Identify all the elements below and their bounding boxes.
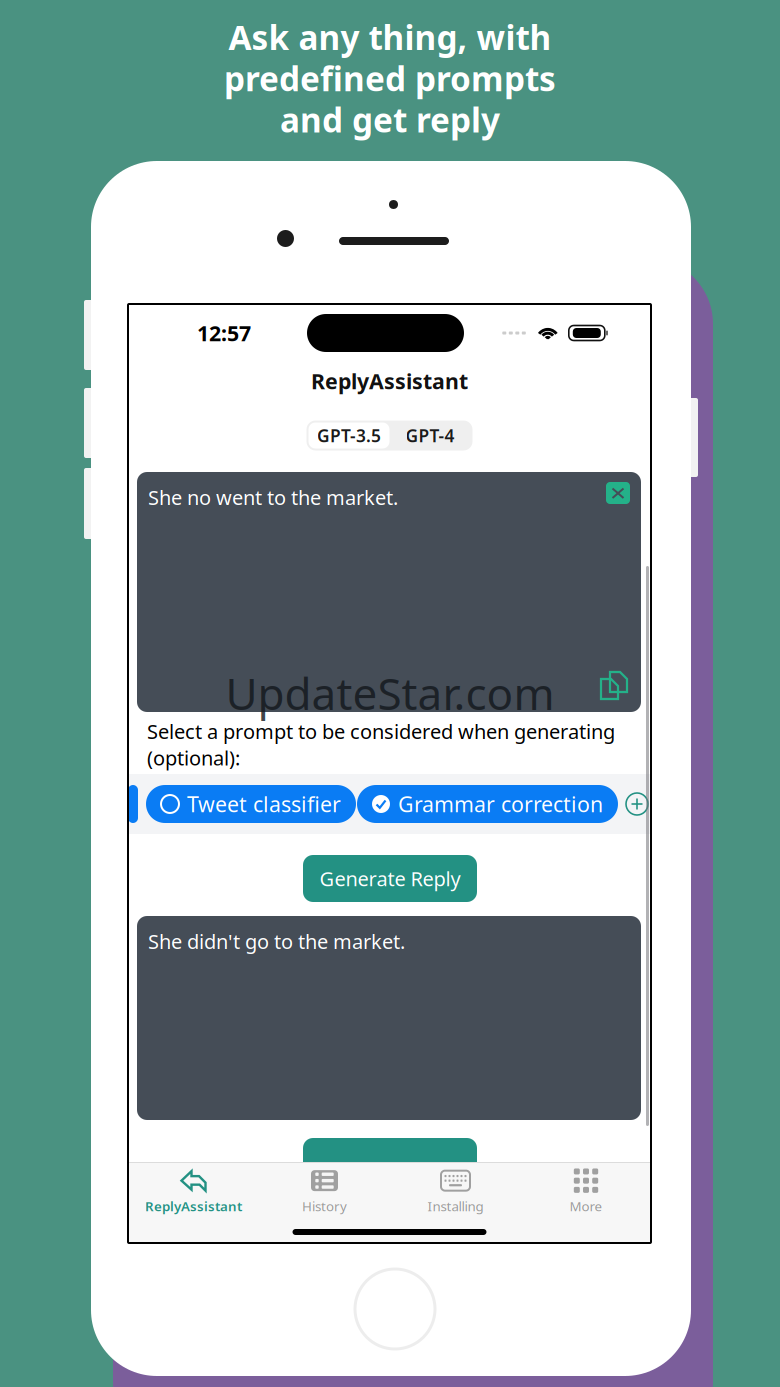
button[interactable]: Copy [599, 670, 630, 702]
staticText: Installing [427, 1197, 483, 1215]
button[interactable]: More [521, 1163, 651, 1221]
staticText: and get reply [280, 97, 500, 142]
staticText: GPT-4 [405, 424, 454, 447]
button[interactable]: GPT-3.5 [308, 422, 389, 448]
button[interactable]: GPT-4 [389, 422, 470, 448]
button[interactable]: Generate Reply [303, 1138, 477, 1185]
staticText: More [569, 1197, 602, 1215]
button[interactable]: Grammar correction [357, 785, 618, 823]
button[interactable]: Clear text [606, 482, 630, 504]
button[interactable]: Tweet classifier [146, 785, 356, 823]
staticText: predefined prompts [224, 56, 556, 101]
staticText: She didn't go to the market. [148, 928, 405, 955]
button[interactable]: Add prompt [626, 793, 648, 815]
staticText: ReplyAssistant [145, 1197, 242, 1215]
staticText: She no went to the market. [148, 484, 398, 511]
staticText: ReplyAssistant [311, 367, 468, 395]
staticText: History [302, 1197, 347, 1215]
staticText: Tweet classifier [187, 790, 341, 818]
button[interactable]: Generate Reply [303, 855, 477, 902]
staticText: 12:57 [197, 319, 251, 347]
staticText: Generate Reply [319, 865, 460, 892]
button[interactable]: Installing [390, 1163, 521, 1221]
staticText: UpdateStar.com [225, 664, 554, 722]
staticText: Grammar correction [398, 790, 603, 818]
staticText: GPT-3.5 [317, 424, 381, 447]
button[interactable]: History [259, 1163, 390, 1221]
button[interactable]: ReplyAssistant [128, 1163, 259, 1221]
staticText: Select a prompt to be considered when ge… [147, 718, 615, 771]
staticText: Ask any thing, with [228, 15, 551, 59]
